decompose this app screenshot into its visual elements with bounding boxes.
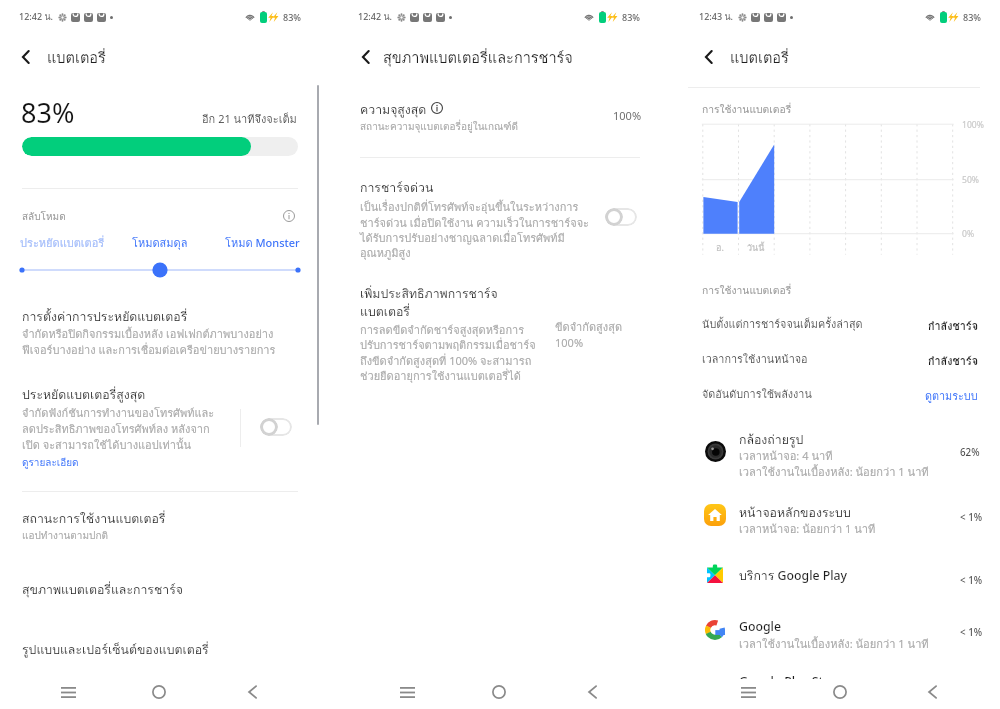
staticText: จัดอันดับการใช้พลังงาน <box>702 386 812 403</box>
staticText: < 1% <box>960 574 983 587</box>
button[interactable]: Recents <box>387 677 427 707</box>
staticText: สถานะการใช้งานแบตเตอรี่ <box>22 509 166 529</box>
button[interactable]: Home <box>139 677 179 707</box>
staticText: ดูตามระบบ <box>925 388 978 405</box>
staticText: บริการ Google Play <box>739 566 848 586</box>
button[interactable]: Toggle <box>605 208 637 226</box>
button[interactable]: โหมด Monster <box>225 234 300 251</box>
staticText: 100% <box>962 119 984 131</box>
staticText: เวลาหน้าจอ: น้อยกว่า 1 นาที <box>739 520 876 538</box>
staticText: วันนี้ <box>747 241 765 255</box>
button[interactable]: สถานะการใช้งานแบตเตอรี่ <box>22 509 298 545</box>
staticText: สถานะความจุแบตเตอรี่อยู่ในเกณฑ์ดี <box>360 119 519 135</box>
button[interactable]: โหมดสมดุล <box>132 234 188 251</box>
staticText: สลับโหมด <box>22 209 66 225</box>
button[interactable] <box>694 497 986 545</box>
button[interactable]: Back <box>912 677 952 707</box>
staticText: เป็นเรื่องปกติที่โทรศัพท์จะอุ่นขึ้นในระห… <box>360 198 589 262</box>
button[interactable]: จัดอันดับการใช้พลังงาน <box>702 386 978 406</box>
button[interactable]: Back <box>572 677 612 707</box>
staticText: 0% <box>962 228 975 240</box>
staticText: นับตั้งแต่การชาร์จจนเต็มครั้งล่าสุด <box>702 316 863 333</box>
staticText: เวลาหน้าจอ: 4 นาที เวลาใช้งานในเบื้องหลั… <box>739 447 929 481</box>
staticText: Google Play St <box>739 673 824 690</box>
button[interactable]: Back <box>354 45 378 69</box>
staticText: < 1% <box>960 511 983 524</box>
button[interactable]: สุขภาพแบตเตอรี่และการชาร์จ <box>22 580 298 600</box>
staticText: การลดขีดจำกัดชาร์จสูงสุดหรือการ ปรับการช… <box>360 321 536 385</box>
button[interactable]: Back <box>232 677 272 707</box>
button[interactable]: ประหยัดแบตเตอรี่ <box>20 234 105 251</box>
button[interactable] <box>694 424 986 472</box>
staticText: การใช้งานแบตเตอรี่ <box>702 101 792 117</box>
staticText: 83% <box>21 94 75 131</box>
staticText: ขีดจำกัดสูงสุด 100% <box>555 318 623 350</box>
staticText: แอปทำงานตามปกติ <box>22 528 108 544</box>
staticText: แบตเตอรี่ <box>47 46 106 69</box>
staticText: หน้าจอหลักของระบบ <box>739 503 851 523</box>
staticText: โหมดสมดุล <box>132 234 188 251</box>
button[interactable]: Recents <box>728 677 768 707</box>
staticText: Google <box>739 618 781 635</box>
staticText: 83% <box>963 11 981 23</box>
staticText: เวลาใช้งานในเบื้องหลัง: น้อยกว่า 1 นาที <box>739 635 929 653</box>
button[interactable]: ความจุสูงสุด <box>360 100 640 138</box>
button[interactable]: Home <box>820 677 860 707</box>
staticText: ประหยัดแบตเตอรี่สูงสุด <box>22 385 146 405</box>
button[interactable]: Home <box>479 677 519 707</box>
button[interactable]: ดูรายละเอียด <box>22 455 79 471</box>
button[interactable]: Recents <box>48 677 88 707</box>
staticText: ประหยัดแบตเตอรี่ <box>20 234 105 251</box>
staticText: แบตเตอรี่ <box>730 46 789 69</box>
staticText: กล้องถ่ายรูป <box>739 430 804 450</box>
staticText: 12:42 น. <box>19 10 53 24</box>
staticText: 50% <box>962 174 979 186</box>
staticText: เพิ่มประสิทธิภาพการชาร์จ แบตเตอรี่ <box>360 284 498 321</box>
staticText: ความจุสูงสุด <box>360 100 427 120</box>
button[interactable]: Info <box>281 208 297 224</box>
staticText: 62% <box>960 446 980 459</box>
button[interactable]: Back <box>697 45 721 69</box>
staticText: กำลังชาร์จ <box>928 318 978 335</box>
staticText: การชาร์จด่วน <box>360 178 434 198</box>
button[interactable]: เวลาการใช้งานหน้าจอ <box>702 351 978 371</box>
staticText: 83% <box>622 11 640 23</box>
staticText: เวลาการใช้งานหน้าจอ <box>702 351 808 368</box>
staticText: สุขภาพแบตเตอรี่และการชาร์จ <box>383 46 573 69</box>
button[interactable]: Toggle <box>260 418 292 436</box>
staticText: 12:43 น. <box>699 10 733 24</box>
staticText: การตั้งค่าการประหยัดแบตเตอรี่ <box>22 307 188 327</box>
staticText: จำกัดหรือปิดกิจกรรมเบื้องหลัง เอฟเฟกต์ภา… <box>22 325 276 359</box>
button[interactable] <box>694 612 986 660</box>
staticText: จำกัดฟังก์ชันการทำงานของโทรศัพท์และ ลดปร… <box>22 404 215 454</box>
staticText: 12:42 น. <box>358 10 392 24</box>
staticText: กำลังชาร์จ <box>928 353 978 370</box>
button[interactable]: นับตั้งแต่การชาร์จจนเต็มครั้งล่าสุด <box>702 316 978 336</box>
staticText: การใช้งานแบตเตอรี่ <box>702 282 792 298</box>
staticText: 100% <box>613 108 642 123</box>
button[interactable]: รูปแบบและเปอร์เซ็นต์ของแบตเตอรี่ <box>22 640 298 660</box>
button[interactable] <box>694 560 986 608</box>
staticText: อ. <box>716 241 724 255</box>
staticText: โหมด Monster <box>225 234 300 251</box>
staticText: 83% <box>283 11 301 23</box>
staticText: รูปแบบและเปอร์เซ็นต์ของแบตเตอรี่ <box>22 640 209 660</box>
staticText: อีก 21 นาทีจึงจะเต็ม <box>202 110 297 127</box>
staticText: สุขภาพแบตเตอรี่และการชาร์จ <box>22 580 184 600</box>
staticText: < 1% <box>960 626 983 639</box>
button[interactable]: Back <box>14 45 38 69</box>
